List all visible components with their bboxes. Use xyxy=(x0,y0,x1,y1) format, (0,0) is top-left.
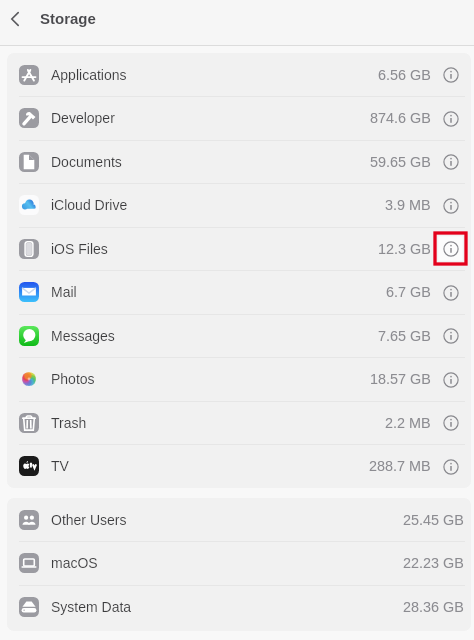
button[interactable]: iOS Files xyxy=(7,227,471,270)
button[interactable]: More info about TV xyxy=(435,451,466,482)
staticText: Mail xyxy=(51,284,77,300)
button[interactable]: More info about Trash xyxy=(435,407,466,438)
button[interactable]: Photos xyxy=(7,357,471,401)
button[interactable]: More info about iOS Files xyxy=(435,233,466,264)
button[interactable]: Back xyxy=(1,5,29,33)
staticText: 59.65 GB xyxy=(370,154,431,170)
staticText: iOS Files xyxy=(51,241,108,257)
staticText: Messages xyxy=(51,328,115,344)
button[interactable]: Other Users xyxy=(7,498,471,541)
button[interactable]: System Data xyxy=(7,585,471,628)
staticText: 6.56 GB xyxy=(378,67,431,83)
staticText: 288.7 MB xyxy=(369,458,431,474)
staticText: Storage xyxy=(40,10,96,27)
button[interactable]: More info about Messages xyxy=(435,320,466,351)
staticText: Trash xyxy=(51,415,87,431)
button[interactable]: Developer xyxy=(7,96,471,140)
staticText: 874.6 GB xyxy=(370,110,431,126)
button[interactable]: Documents xyxy=(7,140,471,183)
staticText: 25.45 GB xyxy=(403,512,464,528)
button[interactable]: Messages xyxy=(7,314,471,357)
staticText: 2.2 MB xyxy=(385,415,431,431)
staticText: 12.3 GB xyxy=(378,241,431,257)
button[interactable]: macOS xyxy=(7,541,471,585)
staticText: 28.36 GB xyxy=(403,599,464,615)
button[interactable]: Trash xyxy=(7,401,471,444)
button[interactable]: More info about Applications xyxy=(435,59,466,90)
button[interactable]: iCloud Drive xyxy=(7,183,471,227)
staticText: Applications xyxy=(51,67,127,83)
staticText: 18.57 GB xyxy=(370,371,431,387)
staticText: 3.9 MB xyxy=(385,197,431,213)
staticText: Other Users xyxy=(51,512,127,528)
staticText: Photos xyxy=(51,371,95,387)
button[interactable]: More info about Developer xyxy=(435,103,466,134)
staticText: System Data xyxy=(51,599,132,615)
staticText: Developer xyxy=(51,110,115,126)
staticText: iCloud Drive xyxy=(51,197,128,213)
button[interactable]: Applications xyxy=(7,53,471,96)
button[interactable]: More info about iCloud Drive xyxy=(435,190,466,221)
staticText: macOS xyxy=(51,555,98,571)
staticText: TV xyxy=(51,458,69,474)
button[interactable]: More info about Photos xyxy=(435,364,466,395)
button[interactable]: More info about Documents xyxy=(435,146,466,177)
staticText: Documents xyxy=(51,154,122,170)
staticText: 22.23 GB xyxy=(403,555,464,571)
staticText: 7.65 GB xyxy=(378,328,431,344)
button[interactable]: More info about Mail xyxy=(435,277,466,308)
button[interactable]: Mail xyxy=(7,270,471,314)
button[interactable]: TV xyxy=(7,444,471,488)
staticText: 6.7 GB xyxy=(386,284,431,300)
